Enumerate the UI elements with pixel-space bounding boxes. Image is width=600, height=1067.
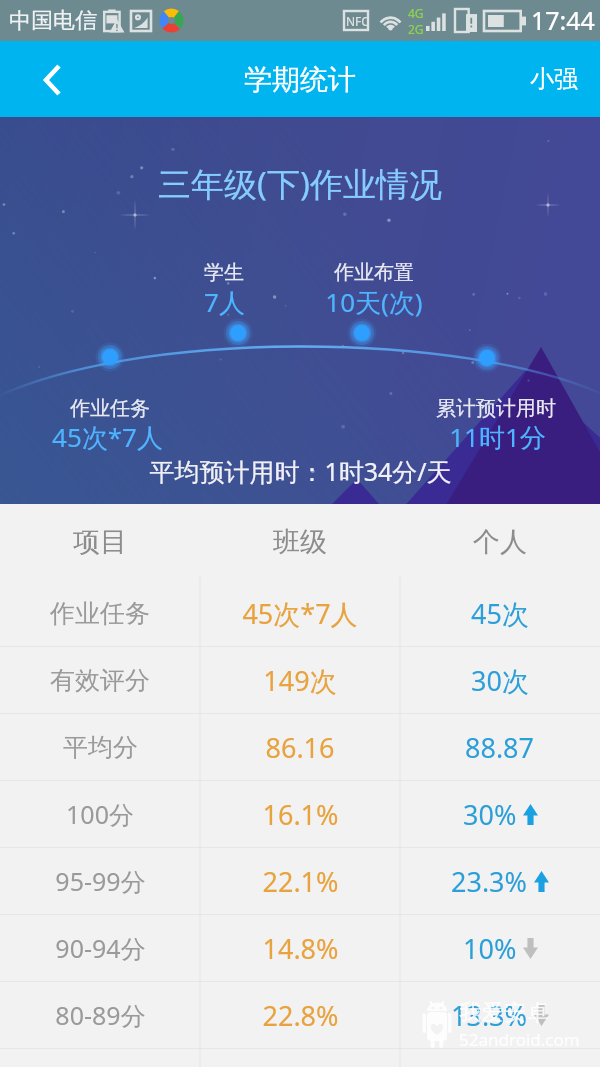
button[interactable]: 作业任务 (0, 580, 600, 646)
staticText: 班级 (273, 525, 327, 559)
staticText: 学生 (204, 260, 244, 285)
staticText: 中国电信 (9, 7, 97, 35)
staticText: 30次 (471, 662, 529, 699)
staticText: 项目 (73, 525, 127, 559)
staticText: 100分 (66, 797, 134, 831)
staticText: 16.1% (262, 796, 339, 833)
staticText: 95-99分 (55, 864, 146, 898)
staticText: 平均分 (63, 732, 138, 763)
staticText: NFC (346, 13, 369, 29)
staticText: 10% (463, 930, 517, 967)
staticText: 45次*7人 (242, 595, 358, 632)
staticText: 学期统计 (244, 62, 356, 97)
staticText: 80-89分 (55, 998, 146, 1032)
staticText: 10天(次) (325, 284, 423, 320)
button[interactable]: 有效评分 (0, 647, 600, 713)
staticText: 平均预计用时：1时34分/天 (149, 454, 452, 488)
staticText: 17:44 (531, 3, 595, 37)
staticText: 22.8% (262, 997, 339, 1034)
button[interactable]: Back (0, 41, 82, 117)
staticText: 23.3% (451, 863, 528, 900)
staticText: 2G (408, 21, 424, 37)
staticText: 22.1% (262, 863, 339, 900)
staticText: 作业任务 (50, 598, 150, 629)
staticText: 88.87 (465, 729, 535, 766)
staticText: 86.16 (265, 729, 335, 766)
button[interactable]: 80-89分 (0, 982, 600, 1048)
staticText: 45次*7人 (52, 419, 163, 455)
staticText: 30% (463, 796, 517, 833)
staticText: 有效评分 (50, 665, 150, 696)
staticText: 90-94分 (55, 931, 146, 965)
staticText: 作业任务 (70, 396, 150, 421)
staticText: 作业布置 (334, 260, 414, 285)
staticText: 我爱安卓 (459, 999, 549, 1027)
button[interactable]: 小强 (508, 41, 600, 117)
staticText: 7人 (204, 284, 245, 320)
staticText: 个人 (473, 525, 527, 559)
staticText: 45次 (471, 595, 529, 632)
button[interactable]: 100分 (0, 781, 600, 847)
button[interactable]: 90-94分 (0, 915, 600, 981)
staticText: 4G (408, 5, 424, 21)
staticText: 14.8% (262, 930, 339, 967)
staticText: 三年级(下)作业情况 (158, 161, 442, 206)
staticText: 小强 (530, 64, 578, 94)
button[interactable]: 平均分 (0, 714, 600, 780)
staticText: 13.3% (451, 997, 528, 1034)
staticText: 52android.com (459, 1028, 580, 1051)
staticText: 149次 (263, 662, 337, 699)
staticText: 11时1分 (449, 419, 546, 455)
staticText: 累计预计用时 (436, 396, 556, 421)
button[interactable]: 95-99分 (0, 848, 600, 914)
